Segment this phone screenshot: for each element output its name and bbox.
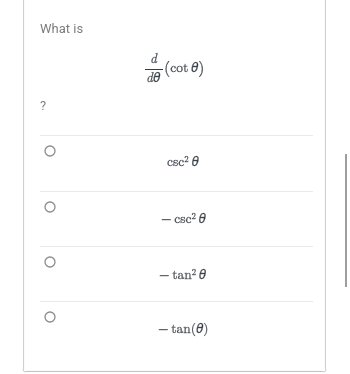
staticText: − tan(θ) xyxy=(158,318,209,337)
staticText: ? xyxy=(40,98,47,113)
button[interactable]: − tan(θ) xyxy=(24,301,325,371)
button[interactable]: − tan2 θ xyxy=(24,246,325,301)
staticText: csc2 θ xyxy=(167,151,199,170)
staticText: csc2 θ xyxy=(167,151,199,170)
staticText: − tan2 θ xyxy=(159,264,207,283)
staticText: − tan(θ) xyxy=(158,318,209,337)
staticText: (cot θ) xyxy=(164,55,205,78)
staticText: (cot θ) xyxy=(164,55,205,78)
staticText: − tan2 θ xyxy=(159,264,207,283)
staticText: dθ xyxy=(146,67,161,86)
staticText: − csc2 θ xyxy=(161,208,206,227)
staticText: dθ xyxy=(146,67,161,86)
staticText: What is xyxy=(40,21,84,36)
button[interactable]: csc2 θ xyxy=(24,135,325,191)
staticText: − csc2 θ xyxy=(161,208,206,227)
staticText: d xyxy=(150,48,157,67)
staticText: d xyxy=(150,48,157,67)
button[interactable]: − csc2 θ xyxy=(24,191,325,246)
